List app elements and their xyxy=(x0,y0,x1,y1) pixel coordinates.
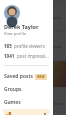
staticText: Games xyxy=(4,99,21,106)
staticText: 185 xyxy=(4,43,12,49)
button[interactable]: Premium xyxy=(3,109,50,115)
button[interactable]: Groups xyxy=(0,83,53,96)
button[interactable]: Saved posts xyxy=(0,70,53,83)
staticText: profile viewers xyxy=(14,43,45,49)
staticText: View profile xyxy=(4,31,26,36)
button[interactable]: Derek Taylor xyxy=(0,3,53,38)
staticText: Derek Taylor xyxy=(4,23,39,30)
staticText: post impressions xyxy=(17,53,49,59)
staticText: NEW xyxy=(37,75,45,79)
button[interactable]: 185 xyxy=(0,41,53,51)
staticText: Saved posts xyxy=(4,73,33,80)
button[interactable]: 1041 xyxy=(0,51,53,61)
staticText: 1041 xyxy=(4,53,15,59)
staticText: Groups xyxy=(4,86,22,93)
button[interactable]: Games xyxy=(0,96,53,109)
